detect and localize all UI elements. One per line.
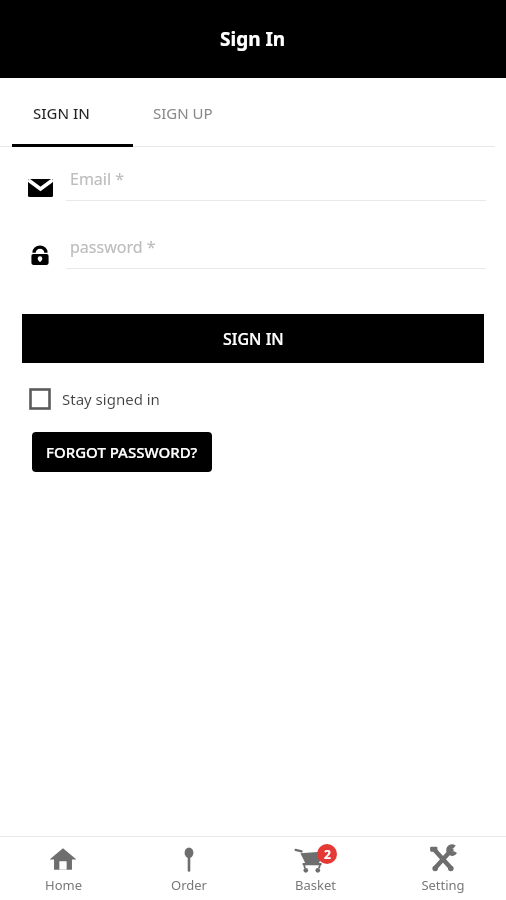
button[interactable]: SIGN IN: [22, 314, 484, 363]
staticText: Sign In: [220, 26, 286, 52]
button[interactable]: FORGOT PASSWORD?: [32, 432, 212, 472]
button[interactable]: Email *: [66, 168, 486, 201]
other: Password: [27, 244, 53, 268]
staticText: FORGOT PASSWORD?: [46, 442, 198, 462]
button[interactable]: Basket: [252, 837, 379, 900]
staticText: SIGN IN: [223, 328, 284, 350]
button[interactable]: Stay signed in: [29, 385, 160, 413]
staticText: Basket: [295, 876, 336, 894]
staticText: Order: [171, 876, 207, 894]
other: Basket: [295, 848, 325, 874]
staticText: Stay signed in: [62, 389, 160, 409]
staticText: Setting: [421, 876, 465, 894]
button[interactable]: SIGN IN: [0, 78, 122, 147]
staticText: password *: [70, 236, 156, 258]
button[interactable]: Home: [0, 837, 126, 900]
other: Order: [176, 846, 202, 872]
other: Setting: [429, 845, 457, 873]
button[interactable]: password *: [66, 236, 486, 269]
staticText: Email *: [70, 168, 125, 190]
staticText: SIGN UP: [153, 103, 213, 123]
staticText: Home: [45, 876, 82, 894]
staticText: 2: [324, 846, 331, 862]
button[interactable]: Setting: [379, 837, 506, 900]
other: Home: [49, 845, 77, 873]
button[interactable]: Order: [126, 837, 252, 900]
button[interactable]: SIGN UP: [122, 78, 244, 147]
staticText: SIGN IN: [33, 103, 90, 123]
other: Email: [28, 176, 53, 200]
